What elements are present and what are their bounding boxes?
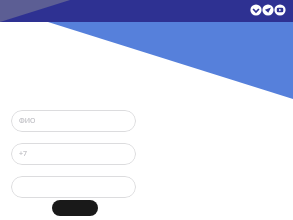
button[interactable]: Telegram bbox=[262, 4, 274, 16]
button[interactable]: Отправить bbox=[52, 200, 98, 216]
button[interactable]: ФИО bbox=[11, 110, 136, 132]
staticText: +7 bbox=[19, 149, 28, 159]
button[interactable]: YouTube bbox=[274, 4, 286, 16]
button[interactable] bbox=[11, 176, 136, 198]
button[interactable]: +7 bbox=[11, 143, 136, 165]
staticText: ФИО bbox=[19, 116, 36, 126]
button[interactable]: VKontakte bbox=[250, 4, 262, 16]
